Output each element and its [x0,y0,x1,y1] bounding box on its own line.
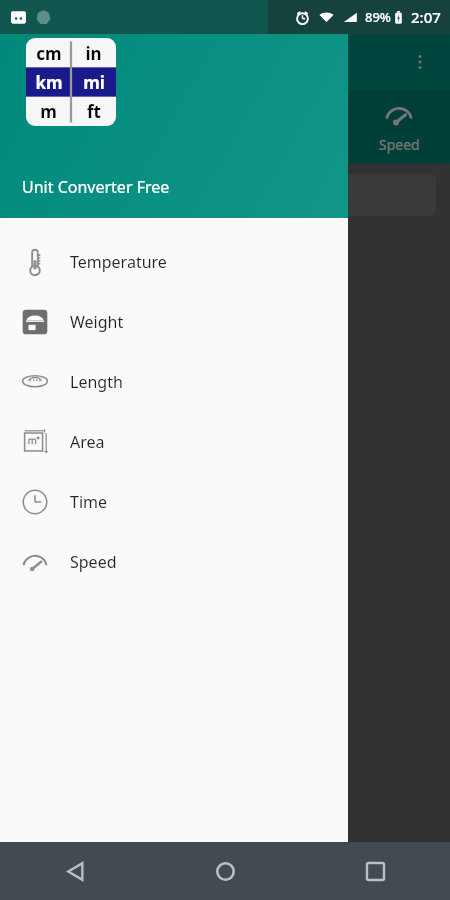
button[interactable]: Weight [0,292,348,352]
button[interactable]: More options [400,42,440,82]
staticText: Metre per minute (m/min) [16,378,224,401]
button[interactable]: Mach (Ma) [0,610,450,673]
button[interactable]: cm [0,0,348,218]
staticText: cm [36,42,62,65]
button[interactable]: Temperature [0,232,348,292]
button[interactable]: Recent apps [300,842,450,900]
staticText: Meter per second (m/s) [16,252,202,275]
button[interactable]: Metre per minute (m/min) [0,358,450,421]
staticText: Foot per second (ft/s) [16,441,186,464]
button[interactable]: Back [0,842,150,900]
staticText: in [85,42,102,65]
staticText: ft [87,100,101,123]
button[interactable]: Speed [348,100,450,154]
staticText: Knot (kn) [16,567,88,590]
staticText: Length [70,371,123,393]
button[interactable] [14,174,436,216]
button[interactable]: Minute per kilometre (min/km) [0,673,450,736]
staticText: mi [83,71,105,94]
staticText: 89% [365,8,391,26]
staticText: Mile per hour (mph) [16,504,176,527]
button[interactable]: Knot (kn) [0,547,450,610]
staticText: km [35,71,63,94]
button[interactable]: Mile per hour (mph) [0,484,450,547]
button[interactable]: Time [0,472,348,532]
staticText: Speed [379,135,420,154]
staticText: Temperature [70,251,167,273]
staticText: Weight [70,311,124,333]
staticText: Speed [70,551,117,573]
button[interactable]: Area [0,412,348,472]
staticText: Time [70,491,108,513]
staticText: Kilometre per hour (km/h) [16,315,225,338]
button[interactable]: Foot per second (ft/s) [0,421,450,484]
button[interactable]: Kilometre per hour (km/h) [0,295,450,358]
button[interactable]: Length [0,352,348,412]
button[interactable]: Home [150,842,300,900]
staticText: 2:07 [411,7,441,27]
staticText: Unit Converter Free [22,176,170,198]
staticText: m [40,100,57,123]
button[interactable]: Speed [0,532,348,592]
staticText: Area [70,431,105,453]
button[interactable]: Meter per second (m/s) [0,232,450,295]
